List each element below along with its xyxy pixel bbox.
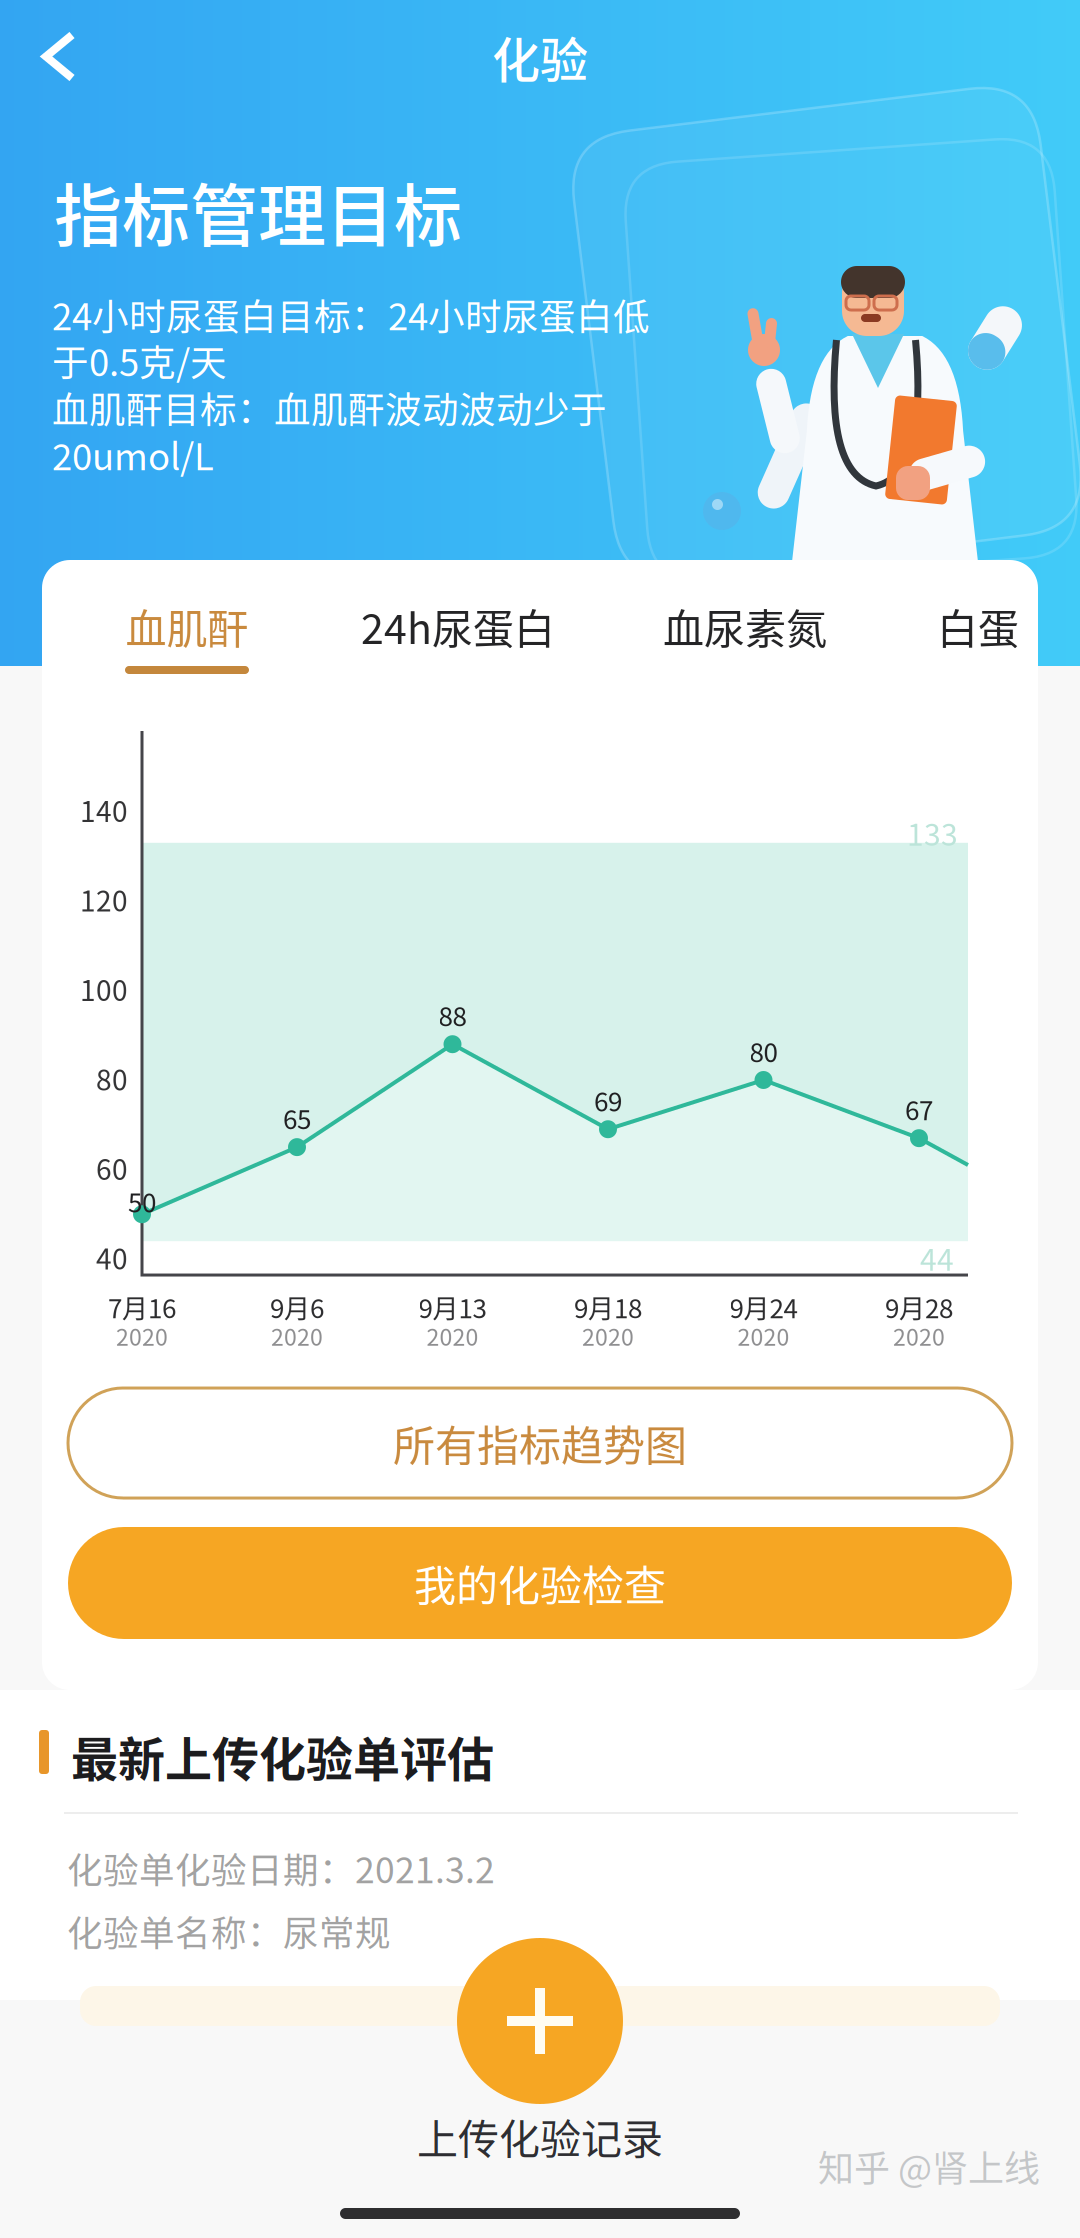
staticText: 65: [283, 1099, 311, 1137]
staticText: 最新上传化验单评估: [71, 1722, 494, 1790]
staticText: 指标管理目标: [54, 162, 462, 260]
button[interactable]: 白蛋: [848, 595, 1080, 695]
staticText: 24小时尿蛋白目标：24小时尿蛋白低: [52, 288, 650, 341]
staticText: 化验单化验日期：2021.3.2: [67, 1842, 495, 1893]
staticText: 2020: [271, 1319, 323, 1352]
staticText: 我的化验检查: [414, 1553, 666, 1613]
staticText: 于0.5克/天: [52, 334, 227, 387]
button[interactable]: 上传化验记录: [417, 1938, 663, 2166]
staticText: 血肌酐: [125, 596, 248, 656]
staticText: 2020: [426, 1319, 478, 1352]
staticText: 44: [920, 1236, 954, 1279]
staticText: 20umol/L: [52, 428, 214, 481]
staticText: 2020: [116, 1319, 168, 1352]
staticText: 2020: [582, 1319, 634, 1352]
staticText: 100: [80, 968, 128, 1009]
staticText: 2020: [737, 1319, 789, 1352]
staticText: 24h尿蛋白: [361, 596, 555, 656]
staticText: 140: [80, 789, 128, 830]
staticText: 80: [749, 1032, 777, 1070]
staticText: 40: [96, 1237, 128, 1277]
staticText: 化验: [492, 22, 588, 91]
staticText: 50: [128, 1182, 156, 1220]
staticText: 60: [96, 1147, 128, 1188]
button[interactable]: 我的化验检查: [68, 1527, 1012, 1639]
staticText: 7月16: [108, 1288, 176, 1326]
staticText: 69: [594, 1081, 622, 1119]
staticText: 血肌酐目标：血肌酐波动波动少于: [52, 381, 607, 434]
staticText: 9月6: [270, 1288, 324, 1326]
button[interactable]: 血尿素氮: [615, 595, 875, 695]
button[interactable]: 24h尿蛋白: [328, 595, 588, 695]
staticText: 9月13: [418, 1288, 486, 1326]
staticText: 67: [905, 1090, 933, 1128]
button[interactable]: 血肌酐: [57, 595, 317, 695]
staticText: 133: [907, 811, 958, 854]
staticText: 9月24: [729, 1288, 797, 1326]
staticText: 120: [80, 879, 128, 919]
staticText: 9月28: [885, 1288, 953, 1326]
staticText: 上传化验记录: [417, 2107, 663, 2166]
staticText: 知乎 @肾上线: [818, 2140, 1040, 2192]
staticText: 血尿素氮: [663, 596, 827, 656]
staticText: 80: [96, 1058, 128, 1098]
staticText: 化验单名称：尿常规: [67, 1905, 391, 1956]
staticText: 2020: [893, 1319, 945, 1352]
staticText: 所有指标趋势图: [393, 1413, 687, 1473]
button[interactable]: 返回: [6, 0, 112, 114]
staticText: 白蛋: [937, 596, 1019, 656]
button[interactable]: 所有指标趋势图: [68, 1388, 1012, 1498]
staticText: 88: [438, 996, 466, 1034]
staticText: 9月18: [574, 1288, 642, 1326]
